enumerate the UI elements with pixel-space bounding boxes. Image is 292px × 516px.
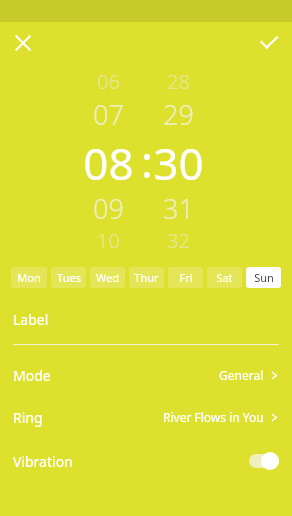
staticText: 32: [167, 227, 190, 254]
staticText: 08: [83, 133, 134, 189]
button[interactable]: Mode: [0, 363, 292, 387]
button[interactable]: 07: [72, 95, 144, 133]
button[interactable]: Sat: [207, 267, 242, 288]
button[interactable]: 32: [142, 227, 214, 254]
staticText: 28: [167, 68, 190, 95]
staticText: 30: [153, 133, 204, 189]
staticText: 09: [93, 190, 124, 227]
staticText: Ring: [13, 408, 43, 427]
button[interactable]: 29: [142, 95, 214, 133]
button[interactable]: 28: [142, 68, 214, 95]
staticText: Tues: [57, 270, 81, 285]
button[interactable]: 09: [72, 189, 144, 227]
staticText: Thur: [134, 270, 159, 285]
button[interactable]: Thur: [129, 267, 164, 288]
staticText: Mon: [17, 270, 41, 285]
staticText: Vibration: [13, 452, 73, 471]
button[interactable]: Ring: [0, 405, 292, 429]
staticText: Wed: [96, 270, 119, 285]
staticText: River Flows in You: [163, 409, 264, 425]
button[interactable]: Vibration: [0, 447, 292, 475]
staticText: Mode: [13, 366, 51, 385]
staticText: :: [141, 131, 153, 191]
staticText: 29: [163, 96, 194, 133]
staticText: Sun: [254, 270, 274, 285]
button[interactable]: Wed: [90, 267, 125, 288]
staticText: General: [219, 367, 264, 383]
staticText: Fri: [179, 270, 193, 285]
staticText: 31: [163, 190, 194, 227]
staticText: 10: [97, 227, 120, 254]
button[interactable]: 08: [72, 133, 144, 189]
button[interactable]: Fri: [168, 267, 203, 288]
button[interactable]: Mon: [11, 267, 47, 288]
staticText: Sat: [216, 270, 233, 285]
staticText: Label: [13, 310, 49, 329]
staticText: 07: [93, 96, 124, 133]
button[interactable]: 10: [72, 227, 144, 254]
button[interactable]: Sun: [246, 267, 281, 288]
staticText: 06: [97, 68, 120, 95]
button[interactable]: 06: [72, 68, 144, 95]
button[interactable]: 30: [142, 133, 214, 189]
button[interactable]: Tues: [51, 267, 86, 288]
button[interactable]: Label: [0, 305, 292, 333]
button[interactable]: Save: [254, 28, 284, 58]
button[interactable]: Cancel: [8, 28, 38, 58]
button[interactable]: 31: [142, 189, 214, 227]
